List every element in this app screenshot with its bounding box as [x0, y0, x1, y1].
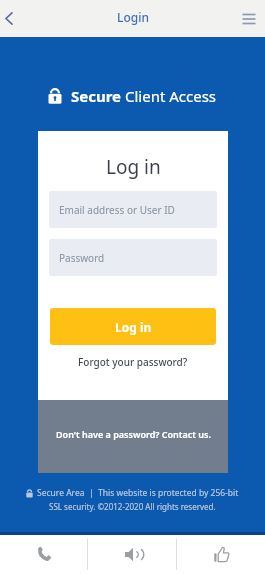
button[interactable]: Forgot your password?: [72, 349, 194, 375]
button[interactable]: [88, 535, 176, 574]
staticText: SSL security. ©2012-2020 All rights rese…: [49, 501, 216, 512]
staticText: Log in: [115, 319, 152, 335]
staticText: Email address or User ID: [59, 203, 175, 217]
button[interactable]: [233, 0, 265, 37]
staticText: Log in: [106, 154, 161, 180]
button[interactable]: Email address or User ID: [49, 191, 217, 228]
staticText: Secure Client Access: [71, 86, 217, 106]
button[interactable]: [0, 0, 18, 37]
button[interactable]: Don't have a password? Contact us.: [38, 400, 228, 473]
button[interactable]: [0, 535, 87, 574]
staticText: Secure Area | This website is protected …: [37, 487, 239, 499]
staticText: Password: [59, 251, 105, 265]
button[interactable]: Log in: [50, 308, 216, 345]
button[interactable]: [177, 535, 265, 574]
staticText: Forgot your password?: [78, 355, 188, 369]
staticText: Don't have a password? Contact us.: [56, 428, 211, 440]
staticText: Login: [117, 9, 149, 25]
button[interactable]: Password: [49, 239, 217, 276]
